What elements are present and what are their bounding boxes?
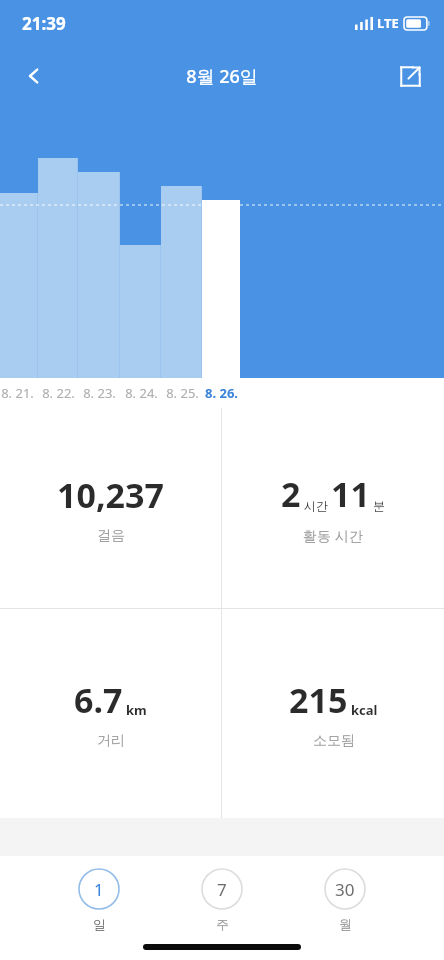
- staticText: 걸음: [97, 527, 125, 545]
- staticText: 6.7: [74, 677, 123, 723]
- staticText: 거리: [97, 732, 125, 750]
- staticText: 주: [216, 916, 229, 932]
- staticText: LTE: [377, 14, 399, 32]
- staticText: 8. 21.: [1, 384, 34, 402]
- staticText: 활동 시간: [303, 526, 363, 545]
- staticText: 8. 24.: [125, 384, 158, 402]
- button[interactable]: 10,237: [0, 408, 221, 608]
- staticText: 215: [289, 677, 348, 723]
- staticText: 8월 26일: [186, 64, 258, 89]
- staticText: 일: [93, 916, 106, 932]
- button[interactable]: 2: [222, 408, 444, 608]
- staticText: 30: [335, 878, 355, 901]
- button[interactable]: 7: [192, 868, 252, 932]
- button[interactable]: Share: [386, 52, 434, 100]
- staticText: 8. 23.: [83, 384, 116, 402]
- staticText: 1: [94, 878, 104, 901]
- button[interactable]: 215: [222, 609, 444, 818]
- staticText: km: [126, 701, 147, 719]
- staticText: 8. 25.: [166, 384, 199, 402]
- staticText: 21:39: [22, 12, 66, 35]
- staticText: 시간: [304, 498, 328, 513]
- staticText: 소모됨: [313, 732, 355, 750]
- staticText: 2: [281, 471, 301, 517]
- button[interactable]: Back: [10, 52, 58, 100]
- button[interactable]: 1: [69, 868, 129, 932]
- staticText: 분: [373, 498, 385, 513]
- staticText: 10,237: [57, 472, 164, 518]
- button[interactable]: 6.7: [0, 609, 221, 818]
- button[interactable]: 30: [315, 868, 375, 932]
- staticText: 8. 26.: [205, 384, 238, 402]
- staticText: 7: [217, 878, 227, 901]
- staticText: 월: [339, 916, 352, 932]
- staticText: kcal: [351, 701, 378, 719]
- staticText: 8. 22.: [42, 384, 75, 402]
- staticText: 11: [331, 471, 370, 517]
